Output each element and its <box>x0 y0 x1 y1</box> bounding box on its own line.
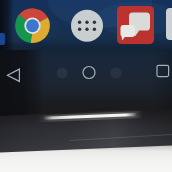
button[interactable]: Android phone home screen <box>0 0 172 172</box>
